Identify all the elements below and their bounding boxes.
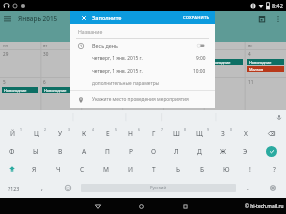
button[interactable]: Back bbox=[76, 198, 119, 214]
staticText: четверг, 1 янв. 2015 г. bbox=[92, 55, 143, 62]
button[interactable]: Ч bbox=[46, 160, 70, 178]
button[interactable]: Ь bbox=[166, 160, 190, 178]
button[interactable]: П bbox=[96, 142, 119, 160]
button[interactable]: Home bbox=[119, 198, 163, 214]
staticText: 2 bbox=[44, 127, 46, 132]
staticText: 4 bbox=[92, 127, 94, 132]
button[interactable]: четверг, 1 янв. 2015 г. bbox=[70, 65, 215, 77]
button[interactable]: ? bbox=[262, 160, 286, 178]
staticText: четверг, 1 янв. 2015 г. bbox=[92, 68, 143, 75]
button[interactable]: Весь день bbox=[70, 39, 215, 52]
button[interactable]: Close bbox=[80, 14, 88, 22]
staticText: 1 bbox=[125, 51, 128, 57]
staticText: 30 bbox=[43, 51, 49, 57]
button[interactable]: Новогодние bbox=[206, 59, 243, 65]
button[interactable]: дополнительные параметры bbox=[70, 77, 215, 90]
button[interactable]: Voice input bbox=[274, 113, 283, 122]
button[interactable]: Новогодние bbox=[2, 87, 38, 93]
button[interactable]: Укажите место проведения мероприятия bbox=[70, 91, 215, 108]
button[interactable]: Ц bbox=[24, 124, 48, 142]
button[interactable]: С bbox=[70, 160, 94, 178]
staticText: Ж bbox=[220, 147, 226, 156]
button[interactable]: Й bbox=[0, 124, 24, 142]
button[interactable]: ?123 bbox=[0, 178, 28, 198]
staticText: Т bbox=[152, 165, 156, 174]
button[interactable]: И bbox=[118, 160, 142, 178]
button[interactable]: Recents bbox=[163, 198, 207, 214]
staticText: 7 bbox=[161, 127, 163, 132]
button[interactable]: Новогодние bbox=[247, 59, 284, 65]
button[interactable]: Backspace bbox=[257, 124, 286, 142]
button[interactable]: Т bbox=[142, 160, 166, 178]
button[interactable]: Л bbox=[165, 142, 188, 160]
button[interactable]: Малков bbox=[247, 66, 284, 72]
button[interactable]: Щ bbox=[188, 124, 211, 142]
staticText: Б bbox=[200, 165, 205, 174]
button[interactable]: Emoji bbox=[55, 178, 81, 198]
button[interactable]: К bbox=[72, 124, 96, 142]
button[interactable]: Д bbox=[188, 142, 211, 160]
button[interactable]: Ф bbox=[0, 142, 24, 160]
button[interactable]: СОХРАНИТЬ bbox=[178, 12, 215, 24]
button[interactable]: Х bbox=[234, 124, 257, 142]
staticText: 8 bbox=[184, 127, 186, 132]
staticText: 9:00 bbox=[196, 55, 206, 62]
button[interactable]: Menu bbox=[0, 11, 15, 26]
button[interactable]: З bbox=[211, 124, 234, 142]
button[interactable]: Change keyboard bbox=[260, 178, 286, 198]
staticText: И bbox=[128, 165, 133, 174]
staticText: 8 bbox=[125, 79, 128, 85]
button[interactable]: Е bbox=[96, 124, 119, 142]
button[interactable]: Новогодние bbox=[42, 87, 79, 93]
button[interactable]: Н bbox=[119, 124, 142, 142]
button[interactable]: М bbox=[94, 160, 118, 178]
staticText: 29 bbox=[3, 51, 9, 57]
staticText: Л bbox=[174, 147, 179, 156]
button[interactable]: У bbox=[48, 124, 72, 142]
button[interactable]: Б bbox=[190, 160, 214, 178]
button[interactable]: Р bbox=[119, 142, 142, 160]
staticText: Укажите место проведения мероприятия bbox=[92, 96, 189, 103]
button[interactable]: А bbox=[72, 142, 96, 160]
staticText: Н bbox=[128, 129, 133, 138]
button[interactable]: О bbox=[142, 142, 165, 160]
button[interactable]: Ю bbox=[214, 160, 238, 178]
button[interactable]: All day toggle bbox=[196, 41, 205, 50]
staticText: 9 bbox=[207, 127, 209, 132]
button[interactable]: Русский bbox=[81, 178, 236, 198]
button[interactable]: More options bbox=[272, 11, 284, 26]
staticText: Е bbox=[106, 129, 110, 138]
staticText: Э bbox=[243, 147, 248, 156]
staticText: Новогодние bbox=[4, 88, 27, 93]
button[interactable]: Название bbox=[70, 24, 215, 39]
button[interactable]: , bbox=[28, 178, 55, 198]
button[interactable]: Shift bbox=[0, 160, 23, 178]
button[interactable]: Э bbox=[234, 142, 257, 160]
staticText: З bbox=[221, 129, 225, 138]
button[interactable]: Enter bbox=[257, 142, 286, 160]
button[interactable]: Today bbox=[255, 11, 269, 26]
staticText: Весь день bbox=[92, 42, 118, 49]
staticText: Щ bbox=[196, 129, 203, 138]
button[interactable]: Г bbox=[142, 124, 165, 142]
button[interactable]: ! bbox=[238, 160, 262, 178]
staticText: 8:42 bbox=[272, 2, 283, 9]
button[interactable]: Ы bbox=[24, 142, 48, 160]
button[interactable]: В bbox=[48, 142, 72, 160]
staticText: Ы bbox=[33, 147, 39, 156]
staticText: Ф bbox=[9, 147, 15, 156]
staticText: О bbox=[151, 147, 157, 156]
button[interactable]: Ш bbox=[165, 124, 188, 142]
staticText: 3 bbox=[68, 127, 70, 132]
button[interactable]: Я bbox=[23, 160, 46, 178]
button[interactable]: четверг, 1 янв. 2015 г. bbox=[70, 52, 215, 65]
staticText: 6 bbox=[43, 79, 46, 85]
staticText: Новогодние bbox=[249, 60, 272, 65]
button[interactable]: Ж bbox=[211, 142, 234, 160]
staticText: Русский bbox=[150, 185, 167, 191]
